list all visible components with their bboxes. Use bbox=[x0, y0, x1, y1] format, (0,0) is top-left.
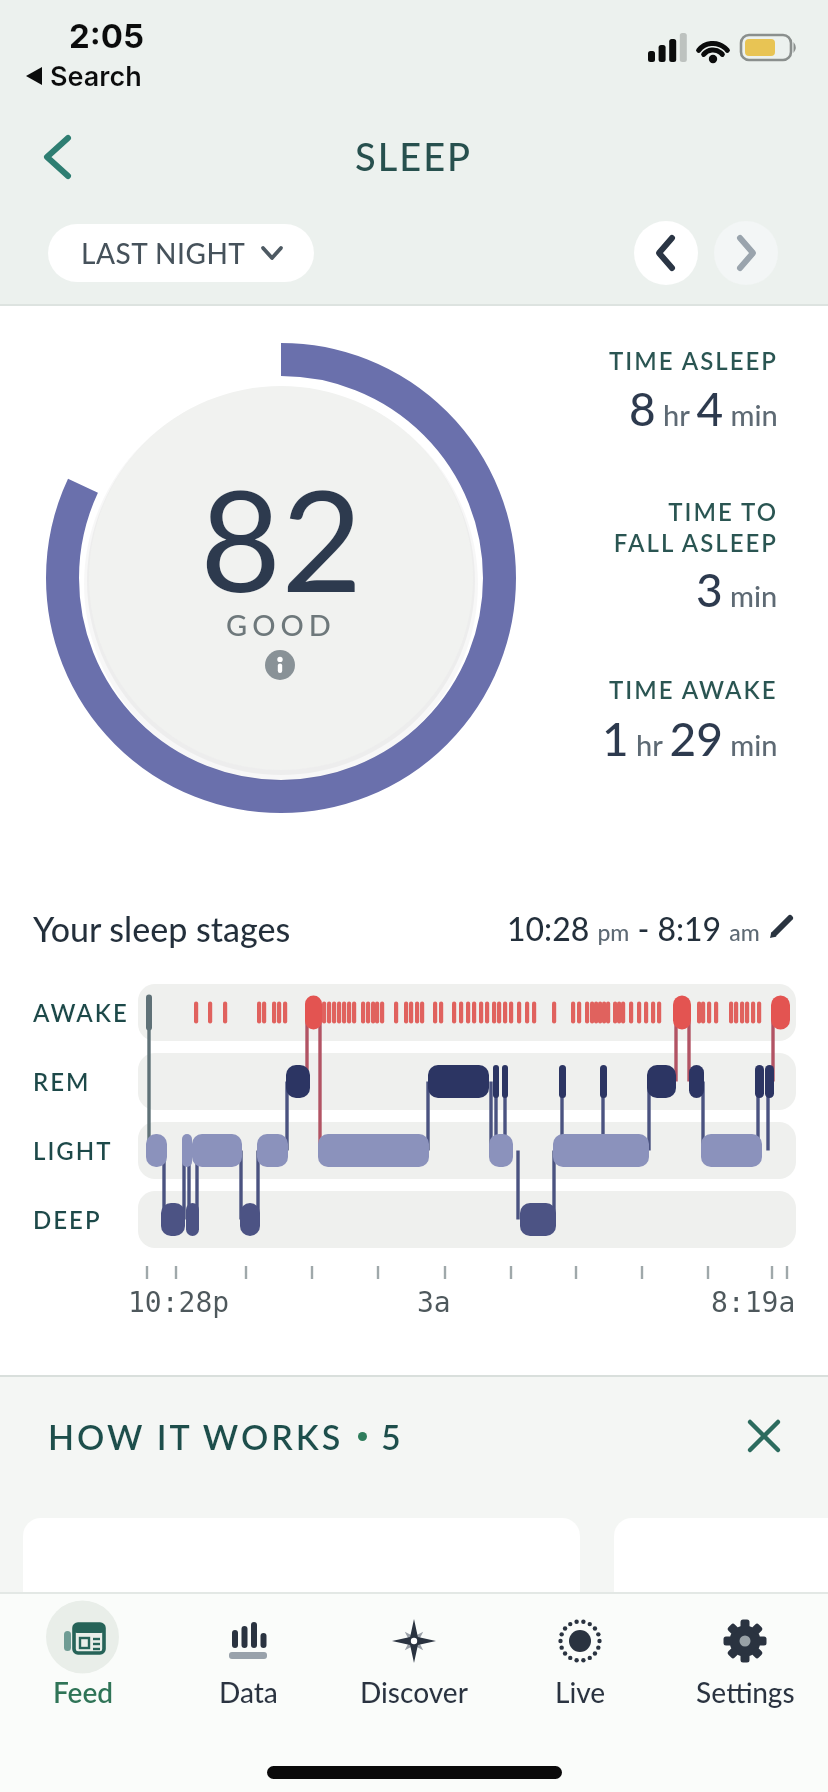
staticText: AWAKE bbox=[33, 998, 129, 1027]
staticText: 3a bbox=[417, 1286, 451, 1319]
staticText: 10:28 pm - 8:19 am bbox=[507, 909, 760, 947]
staticText: 8:19a bbox=[711, 1286, 796, 1319]
staticText: Search bbox=[50, 60, 142, 93]
staticText: Data bbox=[219, 1675, 278, 1709]
button[interactable] bbox=[263, 648, 297, 682]
staticText: 10:28p bbox=[128, 1286, 230, 1319]
button[interactable] bbox=[634, 221, 698, 285]
button[interactable]: Discover bbox=[338, 1600, 490, 1720]
staticText: Live bbox=[555, 1675, 606, 1709]
staticText: 5 bbox=[381, 1416, 401, 1457]
staticText: TIME AWAKE bbox=[609, 675, 778, 704]
button[interactable]: Feed bbox=[7, 1600, 159, 1720]
staticText: Your sleep stages bbox=[33, 908, 291, 949]
button[interactable]: Data bbox=[172, 1600, 324, 1720]
staticText: LAST NIGHT bbox=[81, 236, 246, 270]
button[interactable] bbox=[766, 910, 800, 944]
staticText: REM bbox=[33, 1067, 91, 1096]
button[interactable]: Settings bbox=[669, 1600, 821, 1720]
staticText: Discover bbox=[360, 1675, 468, 1709]
staticText: SLEEP bbox=[355, 133, 473, 179]
button[interactable]: Live bbox=[504, 1600, 656, 1720]
staticText: 2:05 bbox=[69, 16, 145, 56]
staticText: 1 hr 29 min bbox=[602, 711, 778, 766]
button[interactable] bbox=[714, 221, 778, 285]
staticText: 3 min bbox=[696, 562, 778, 617]
button[interactable] bbox=[23, 1518, 580, 1594]
button[interactable] bbox=[614, 1518, 828, 1594]
staticText: HOW IT WORKS bbox=[48, 1416, 344, 1457]
staticText: DEEP bbox=[33, 1205, 102, 1234]
staticText: TIME ASLEEP bbox=[609, 346, 778, 375]
staticText: Settings bbox=[696, 1675, 795, 1709]
button[interactable] bbox=[34, 130, 86, 182]
staticText: Feed bbox=[53, 1675, 114, 1709]
staticText: TIME TO FALL ASLEEP bbox=[613, 497, 778, 557]
button[interactable]: LAST NIGHT bbox=[48, 224, 314, 282]
button[interactable] bbox=[740, 1412, 788, 1460]
staticText: 82 bbox=[200, 454, 363, 622]
staticText: GOOD bbox=[226, 607, 336, 642]
staticText: 8 hr 4 min bbox=[629, 381, 778, 436]
staticText: LIGHT bbox=[33, 1136, 113, 1165]
